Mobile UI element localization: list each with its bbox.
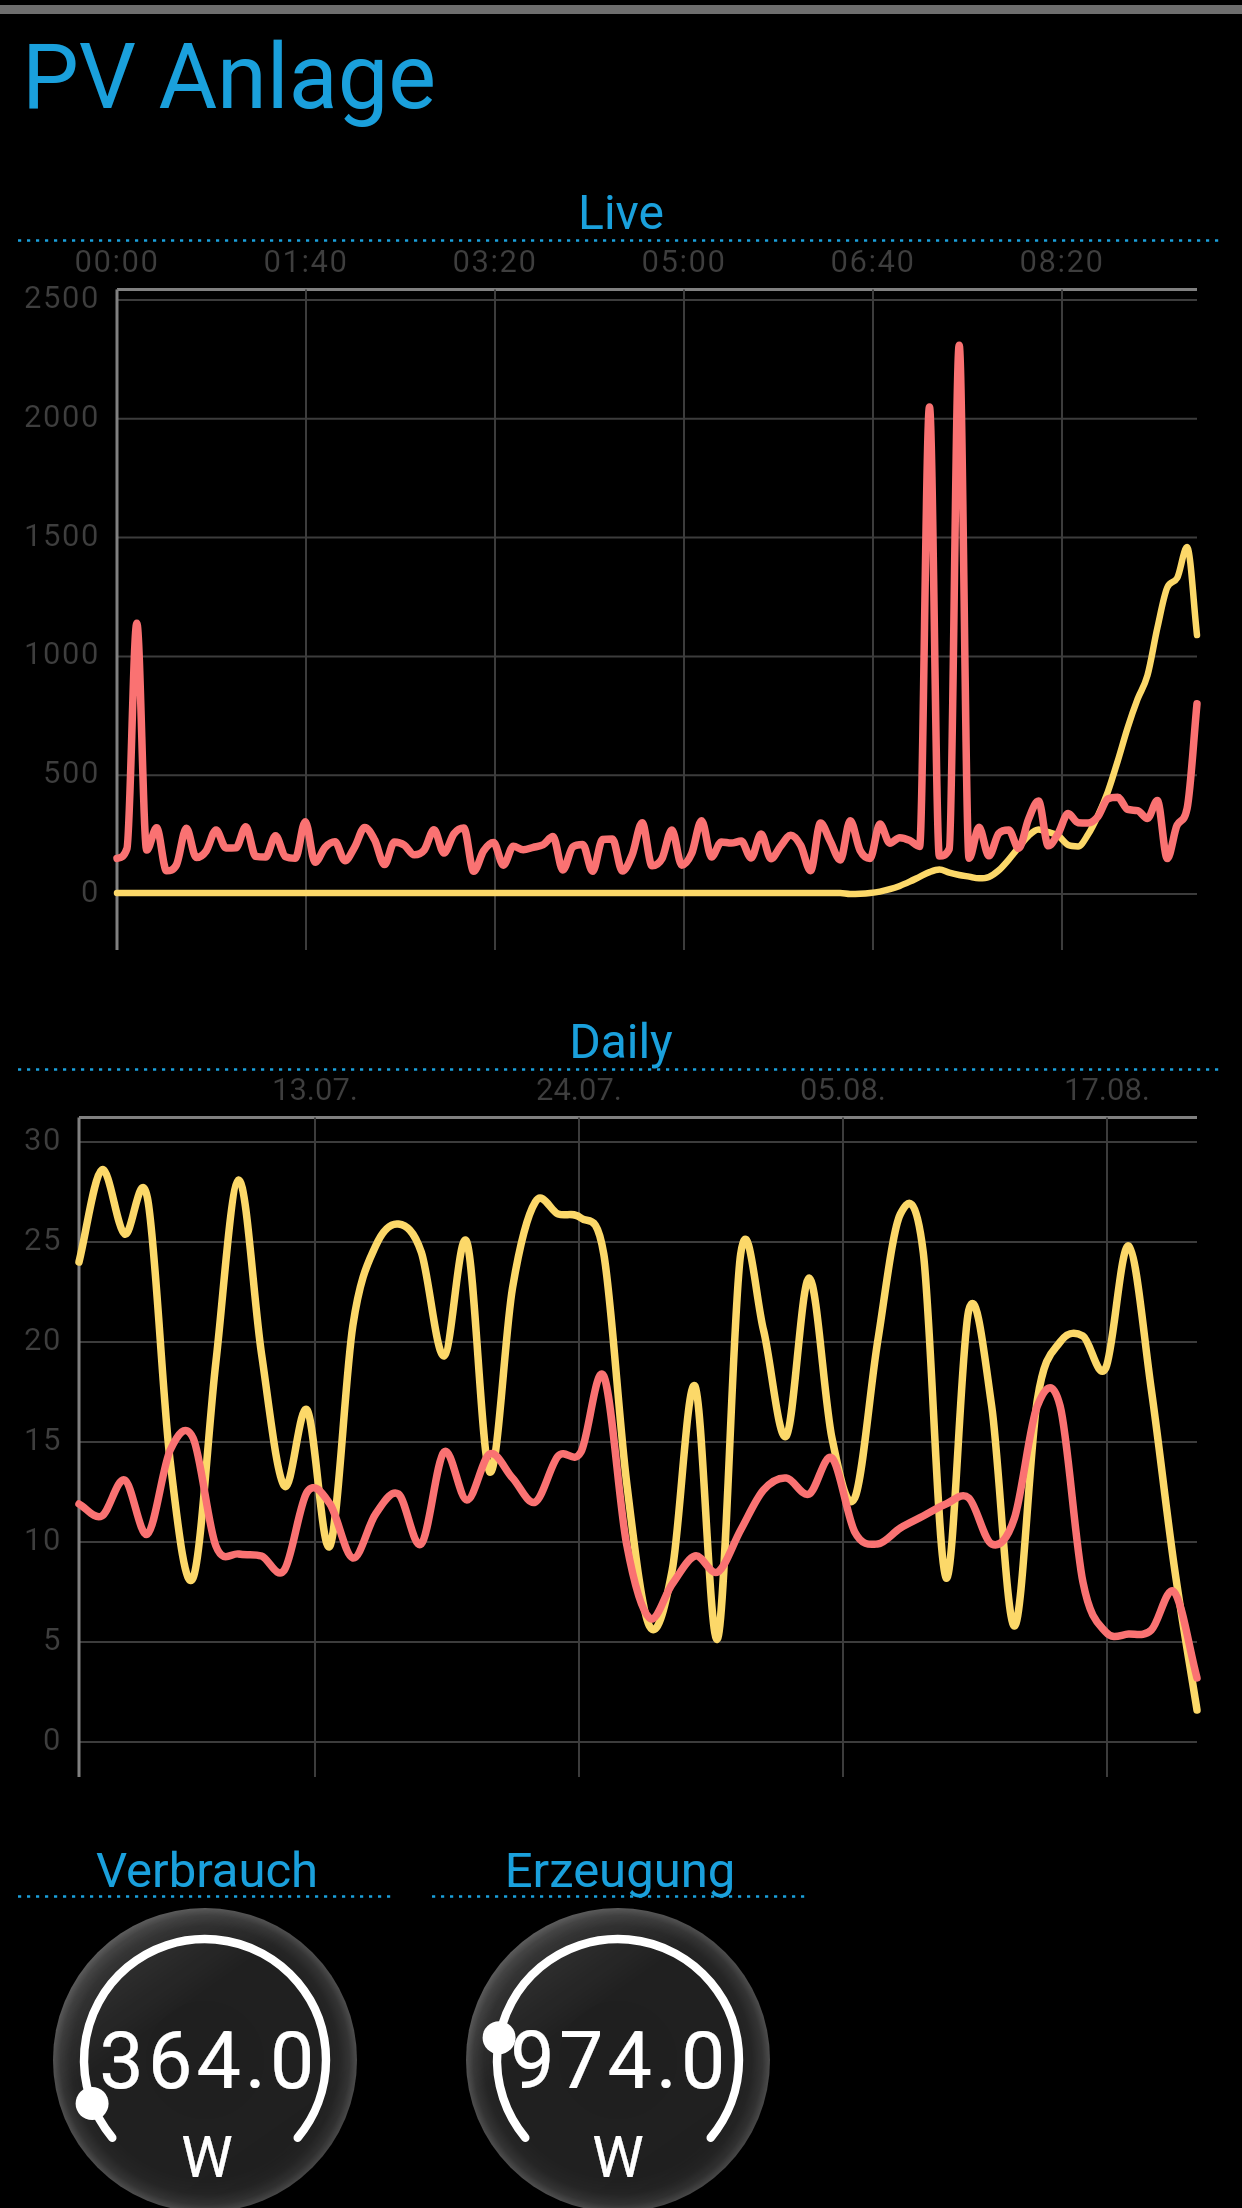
staticText: Verbrauch: [7, 1842, 407, 1899]
staticText: 2000: [0, 398, 100, 434]
staticText: 06:40: [803, 243, 943, 279]
staticText: 24.07.: [499, 1071, 659, 1107]
staticText: 15: [0, 1421, 62, 1457]
staticText: 0: [0, 1721, 62, 1757]
button[interactable]: Daily energy chart: [0, 1010, 1242, 1800]
staticText: 2500: [0, 279, 100, 315]
button[interactable]: PV Anlage: [22, 25, 436, 130]
staticText: 20: [0, 1321, 62, 1357]
staticText: 500: [0, 754, 100, 790]
staticText: 17.08.: [1027, 1071, 1187, 1107]
staticText: Daily: [0, 1013, 1242, 1069]
staticText: 08:20: [992, 243, 1132, 279]
staticText: 25: [0, 1221, 62, 1257]
staticText: 974.0: [470, 2015, 770, 2108]
staticText: 1500: [0, 517, 100, 553]
button[interactable]: Erzeugung 974.0 W: [466, 1908, 770, 2208]
staticText: Live: [0, 184, 1242, 240]
staticText: 00:00: [47, 243, 187, 279]
staticText: 05:00: [614, 243, 754, 279]
staticText: W: [57, 2123, 357, 2191]
staticText: 05.08.: [763, 1071, 923, 1107]
staticText: W: [468, 2123, 768, 2191]
staticText: 5: [0, 1621, 62, 1657]
staticText: 364.0: [59, 2015, 359, 2108]
staticText: 01:40: [236, 243, 376, 279]
staticText: 10: [0, 1521, 62, 1557]
staticText: Erzeugung: [420, 1842, 820, 1899]
button[interactable]: Verbrauch 364.0 W: [53, 1908, 357, 2208]
staticText: 13.07.: [235, 1071, 395, 1107]
staticText: 03:20: [425, 243, 565, 279]
staticText: 0: [0, 873, 100, 909]
button[interactable]: Live power chart: [0, 182, 1242, 962]
staticText: 30: [0, 1121, 62, 1157]
staticText: 1000: [0, 635, 100, 671]
